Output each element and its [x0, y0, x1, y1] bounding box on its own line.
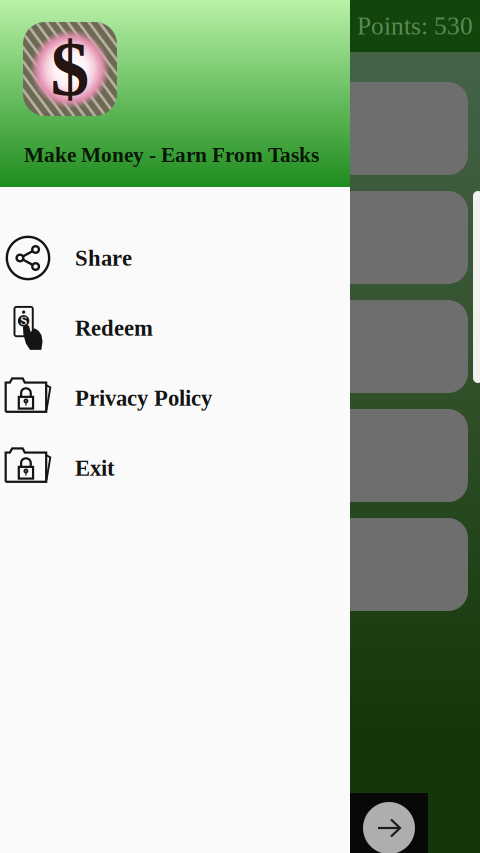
staticText: Share [75, 245, 132, 270]
button[interactable]: Next [350, 793, 428, 853]
staticText: Exit [75, 455, 115, 480]
staticText: S [20, 313, 27, 328]
button[interactable]: Share [0, 223, 350, 293]
staticText: $ [50, 26, 89, 112]
button[interactable]: Privacy Policy [0, 363, 350, 433]
staticText: Privacy Policy [75, 385, 212, 410]
staticText: Make Money - Earn From Tasks [24, 143, 319, 167]
staticText: Earned Points: 530 [280, 12, 473, 40]
button[interactable]: Exit [0, 433, 350, 503]
staticText: Redeem [75, 315, 153, 340]
button[interactable]: S [0, 293, 350, 363]
